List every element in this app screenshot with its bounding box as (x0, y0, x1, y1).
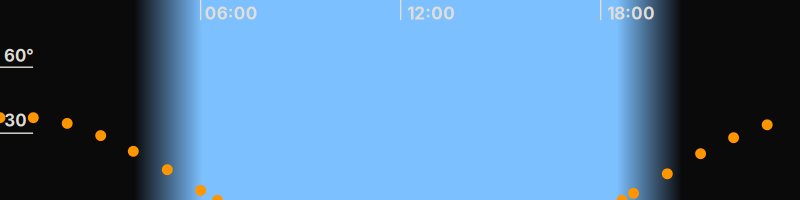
staticText: 60° (4, 45, 34, 66)
staticText: 06:00 (204, 3, 257, 23)
staticText: 18:00 (607, 3, 655, 23)
staticText: 12:00 (407, 3, 455, 23)
staticText: 30 (4, 110, 26, 131)
